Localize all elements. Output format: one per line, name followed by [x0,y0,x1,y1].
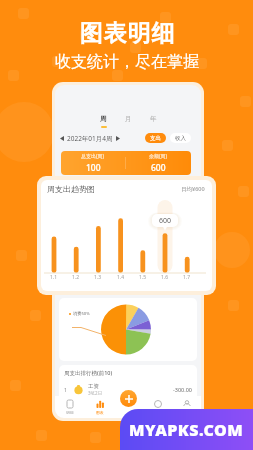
staticText: 总支出(周) [81,153,105,160]
button[interactable]: 支出 [145,133,166,143]
staticText: 周支出趋势图 [47,184,95,194]
staticText: 月 [125,115,132,123]
staticText: 2022年01月4周 [67,134,113,143]
button[interactable]: 发现 [143,396,172,418]
staticText: MYAPKS.COM [129,419,244,441]
staticText: 收支统计，尽在掌握 [55,52,199,72]
staticText: 1.7 [183,274,191,281]
button[interactable]: 年 [146,115,161,128]
button[interactable]: 收入 [170,133,191,143]
staticText: 收入 [175,135,186,142]
staticText: 余额(周) [149,153,168,160]
button[interactable]: 1 [64,383,192,396]
staticText: 周支出排行榜(前10) [64,369,113,377]
button[interactable]: 周 [96,115,111,128]
button[interactable]: Add record [120,390,137,407]
staticText: -300.00 [173,386,192,393]
staticText: 1.1 [50,274,58,281]
staticText: 明细 [66,410,74,415]
staticText: 工资 [88,383,99,390]
staticText: 消费50% [73,311,90,317]
staticText: 1 [64,386,68,393]
button[interactable]: 2022年01月4周 [60,134,120,143]
staticText: 图表 [96,410,104,415]
staticText: 周 [100,115,107,123]
staticText: 600 [159,216,172,226]
button[interactable]: 图表 [85,396,114,418]
button[interactable]: 我的 [172,396,201,418]
staticText: 日均¥600 [181,185,205,193]
staticText: 100 [86,162,101,174]
staticText: 1.4 [117,274,125,281]
staticText: 图表明细 [79,19,175,48]
staticText: 1.2 [72,274,80,281]
staticText: 1.6 [161,274,169,281]
staticText: 3笔2日 [88,390,103,396]
button[interactable]: 月 [121,115,136,128]
button[interactable]: 明细 [55,396,85,418]
staticText: 600 [151,162,166,174]
staticText: 1.3 [94,274,102,281]
staticText: 支出 [150,135,161,142]
staticText: 年 [150,115,157,123]
staticText: 1.5 [139,274,147,281]
